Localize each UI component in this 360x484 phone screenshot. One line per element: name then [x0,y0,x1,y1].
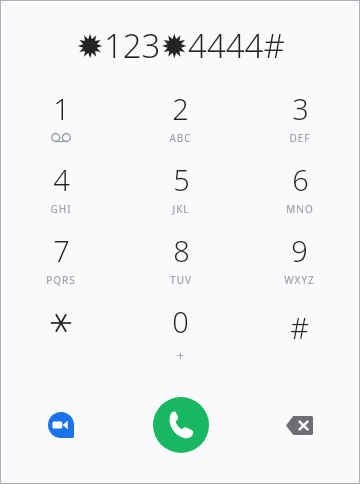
staticText: PQRS [46,273,76,287]
staticText: 1 [53,89,70,128]
button[interactable]: 0 [121,302,240,373]
staticText: TUV [170,273,192,287]
button[interactable]: 8 [121,231,240,302]
staticText: 0 [172,302,189,341]
staticText: 4 [53,160,70,199]
staticText: ABC [169,131,192,145]
button[interactable]: 7 [1,231,121,302]
button[interactable]: 6 [240,160,359,231]
button[interactable]: Video call [1,385,121,465]
staticText: + [177,347,185,363]
staticText: MNO [286,202,314,216]
staticText: DEF [289,131,311,145]
staticText: JKL [172,202,190,216]
staticText: GHI [50,202,72,216]
button[interactable]: # [240,302,359,373]
button[interactable]: 9 [240,231,359,302]
staticText: WXYZ [284,273,315,287]
staticText: 6 [292,160,309,199]
staticText: 3 [292,89,309,128]
staticText: ✹123✹4444# [76,23,285,68]
staticText: 2 [172,89,189,128]
staticText: 8 [173,231,190,270]
button[interactable]: Backspace [240,385,359,465]
staticText: 9 [291,231,308,270]
staticText: # [290,308,309,347]
button[interactable]: 5 [121,160,240,231]
button[interactable]: 1 [1,89,121,160]
staticText: 7 [53,231,70,270]
button[interactable]: 3 [240,89,359,160]
button[interactable]: 2 [121,89,240,160]
button[interactable] [1,302,121,373]
button[interactable]: Call [153,397,209,453]
staticText: 5 [173,160,190,199]
button[interactable]: 4 [1,160,121,231]
